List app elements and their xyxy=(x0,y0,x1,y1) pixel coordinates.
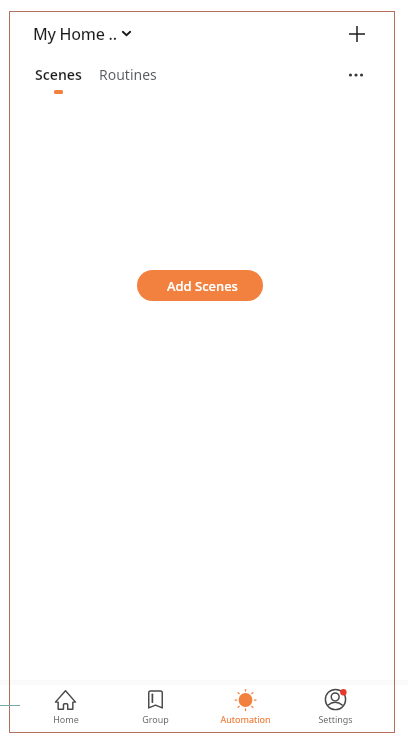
button[interactable]: Add Scenes xyxy=(137,270,263,301)
staticText: Scenes xyxy=(35,65,82,84)
button[interactable]: Add scene xyxy=(335,12,379,56)
staticText: Group xyxy=(142,713,169,725)
button[interactable]: More options xyxy=(336,55,376,95)
staticText: Routines xyxy=(99,65,157,84)
button[interactable]: My Home .. xyxy=(25,19,139,49)
staticText: Home xyxy=(53,713,79,725)
button[interactable]: Routines xyxy=(91,61,165,88)
button[interactable]: Settings xyxy=(290,685,380,725)
button[interactable]: Scenes xyxy=(27,61,90,98)
button[interactable]: Automation xyxy=(200,685,290,725)
staticText: Automation xyxy=(220,713,271,725)
button[interactable]: Home xyxy=(21,685,110,725)
staticText: Settings xyxy=(318,713,353,725)
staticText: My Home .. xyxy=(33,23,117,45)
button[interactable]: Group xyxy=(110,685,200,725)
staticText: Add Scenes xyxy=(167,277,238,295)
